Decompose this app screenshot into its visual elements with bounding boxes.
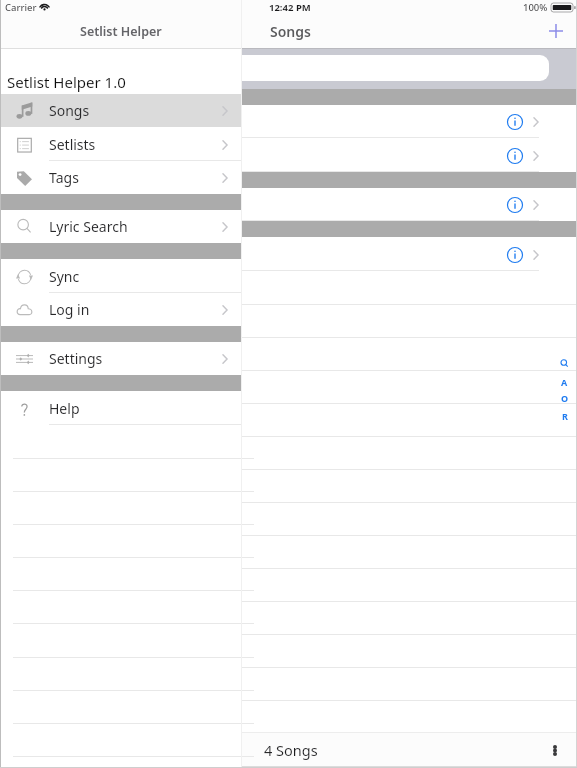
- staticText: Log in: [49, 300, 90, 319]
- button[interactable]: Add song: [543, 20, 569, 42]
- button[interactable]: Song info: [504, 111, 526, 133]
- button[interactable]: Setlists: [0, 128, 241, 161]
- button[interactable]: Help: [0, 392, 241, 425]
- staticText: Help: [49, 399, 80, 418]
- button[interactable]: Song info: [504, 244, 526, 266]
- staticText: Setlist Helper: [80, 23, 162, 40]
- staticText: O: [561, 392, 569, 404]
- staticText: Songs: [270, 22, 311, 41]
- staticText: Tags: [49, 168, 79, 187]
- staticText: Setlists: [49, 135, 96, 154]
- staticText: A: [561, 376, 568, 388]
- button[interactable]: Song info: [0, 238, 577, 271]
- staticText: Setlist Helper 1.0: [7, 72, 126, 92]
- button[interactable]: Sync: [0, 260, 241, 293]
- button[interactable]: Song info: [504, 145, 526, 167]
- button[interactable]: Search: [242, 55, 549, 81]
- button[interactable]: Log in: [0, 293, 241, 326]
- button[interactable]: More options: [544, 739, 566, 761]
- staticText: 12:42 PM: [269, 1, 311, 14]
- staticText: Settings: [49, 349, 103, 368]
- staticText: Carrier: [5, 1, 37, 14]
- staticText: 4 Songs: [264, 740, 318, 760]
- button[interactable]: Tags: [0, 161, 241, 194]
- staticText: Lyric Search: [49, 217, 128, 236]
- button[interactable]: Song info: [504, 194, 526, 216]
- staticText: Sync: [49, 267, 80, 286]
- button[interactable]: Song info: [0, 188, 577, 221]
- button[interactable]: Song info: [0, 139, 577, 172]
- button[interactable]: Lyric Search: [0, 210, 241, 243]
- button[interactable]: Settings: [0, 342, 241, 375]
- staticText: 100%: [523, 1, 548, 14]
- button[interactable]: Song info: [0, 105, 577, 138]
- staticText: Songs: [49, 101, 90, 120]
- button[interactable]: Songs: [0, 94, 241, 127]
- staticText: R: [562, 410, 568, 422]
